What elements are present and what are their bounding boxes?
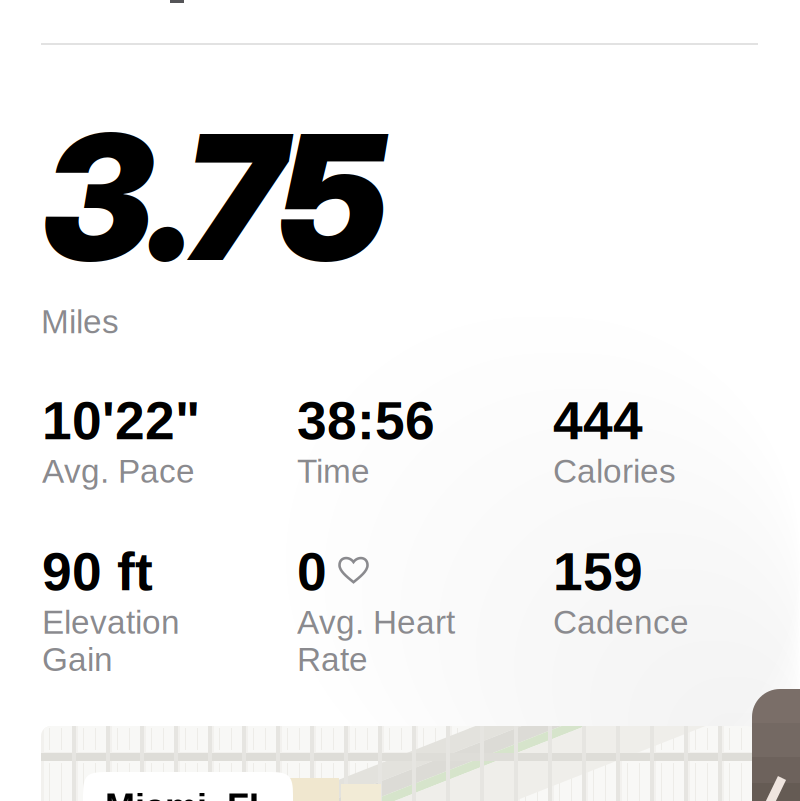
staticText: 0: [297, 542, 327, 602]
staticText: Miami, FL: [105, 787, 271, 801]
staticText: 444: [553, 391, 643, 451]
staticText: Time: [297, 453, 370, 490]
staticText: Avg. Pace: [42, 453, 195, 490]
staticText: 3.75: [42, 92, 386, 302]
staticText: Calories: [553, 453, 676, 490]
staticText: Elevation Gain: [42, 604, 180, 678]
staticText: 90 ft: [42, 542, 153, 602]
staticText: Cadence: [553, 604, 689, 641]
staticText: Miles: [41, 303, 119, 340]
button[interactable]: Back: [752, 689, 800, 801]
staticText: Avg. Heart Rate: [297, 604, 455, 678]
staticText: 10'22": [42, 391, 200, 451]
staticText: 38:56: [297, 391, 435, 451]
staticText: 159: [553, 542, 643, 602]
